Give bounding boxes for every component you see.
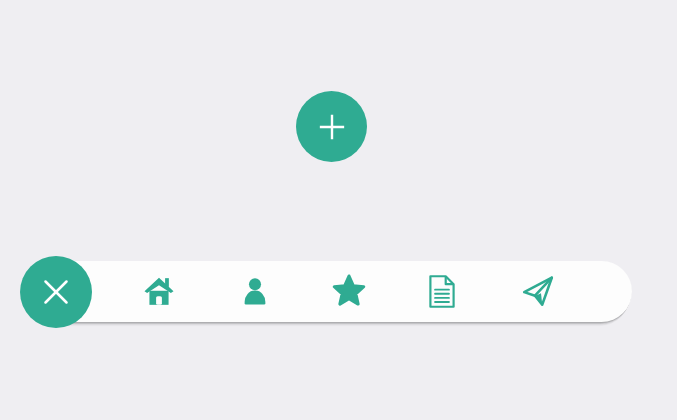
- button[interactable]: Documents: [416, 265, 468, 318]
- button[interactable]: Send: [512, 265, 564, 318]
- button[interactable]: Add: [296, 91, 367, 162]
- button[interactable]: Favourites: [323, 265, 375, 318]
- button[interactable]: Profile: [229, 265, 281, 318]
- button[interactable]: Home: [133, 265, 185, 318]
- button[interactable]: Close: [20, 256, 92, 328]
